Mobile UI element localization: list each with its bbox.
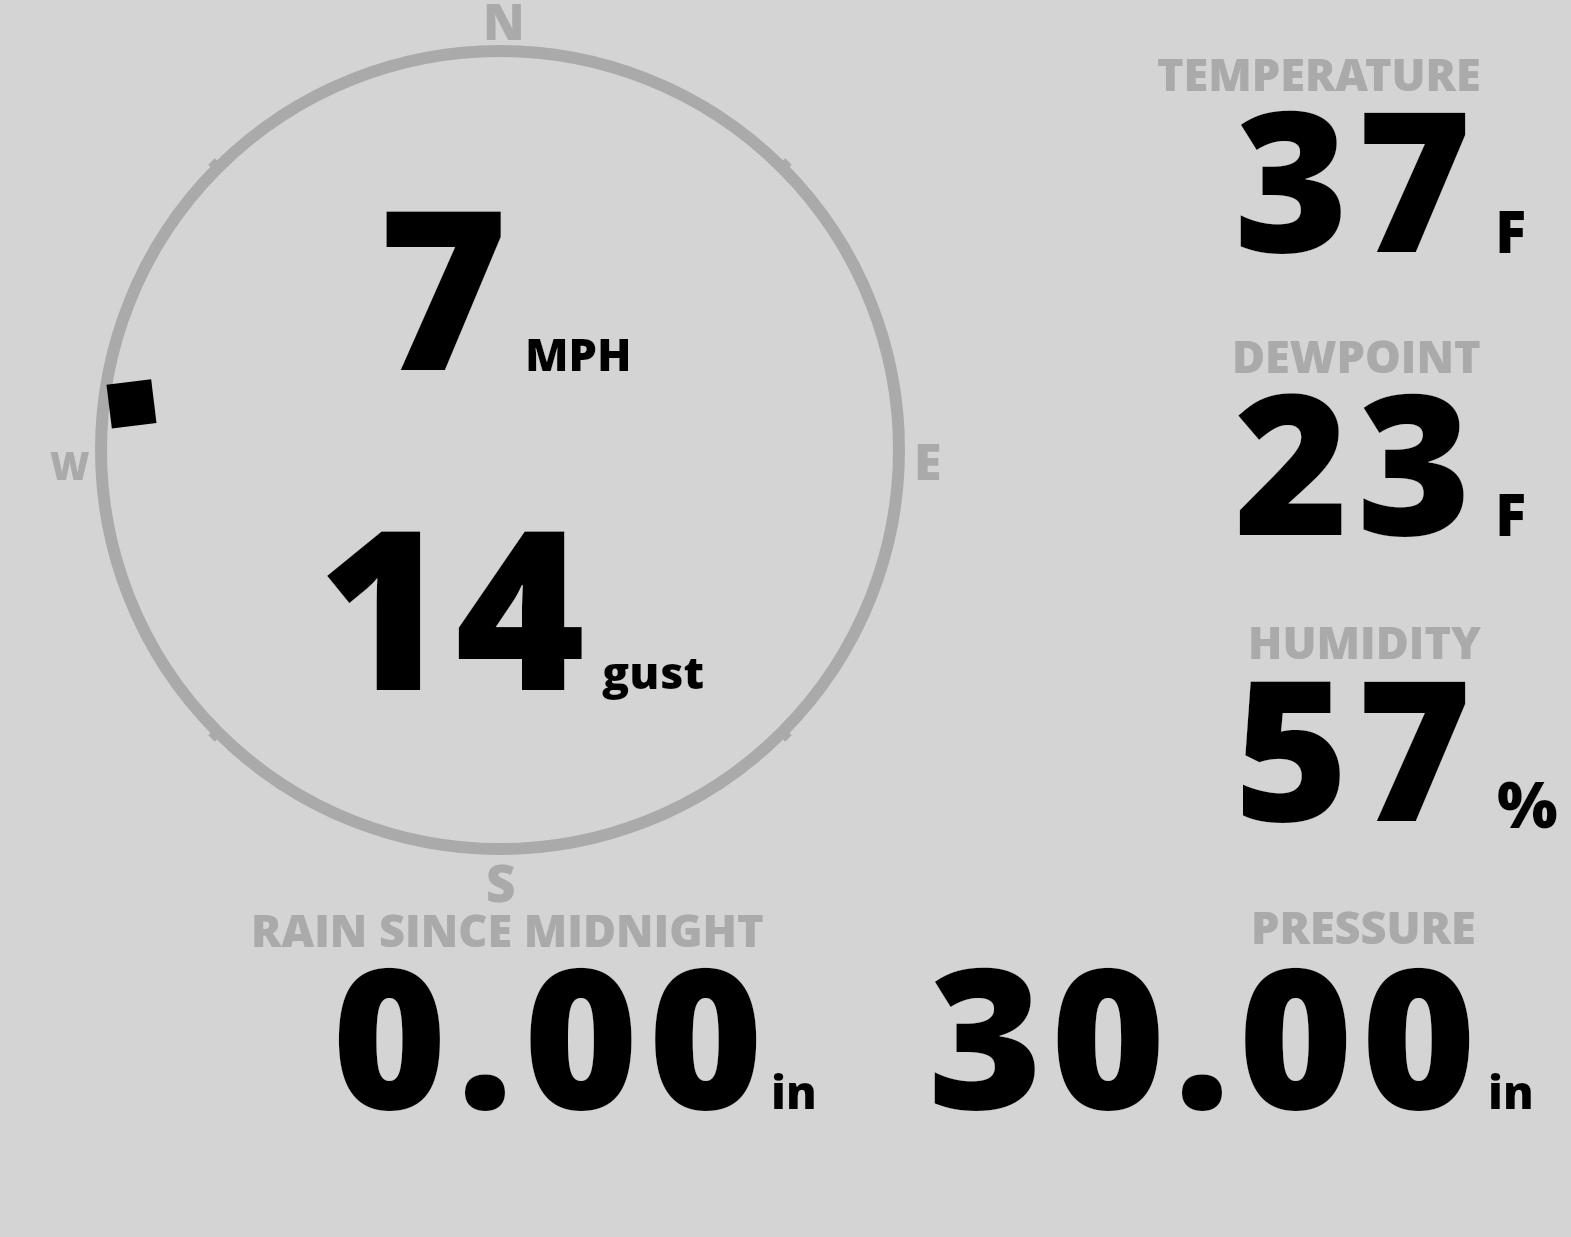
staticText: 14: [318, 453, 593, 755]
staticText: DEWPOINT: [1232, 325, 1481, 386]
staticText: 57: [1234, 612, 1480, 879]
staticText: gust: [602, 641, 705, 702]
staticText: MPH: [525, 323, 632, 384]
staticText: N: [483, 0, 525, 55]
staticText: S: [486, 847, 516, 916]
staticText: HUMIDITY: [1248, 611, 1481, 672]
staticText: in: [1488, 1060, 1534, 1123]
staticText: in: [771, 1060, 817, 1123]
staticText: TEMPERATURE: [1157, 43, 1481, 104]
button[interactable]: Wind direction compass, 7 MPH, 14 gust, …: [88, 38, 916, 864]
button[interactable]: TEMPERATURE 37 F: [1150, 46, 1560, 268]
staticText: W: [50, 439, 90, 491]
staticText: 30.00: [928, 900, 1485, 1167]
staticText: 23: [1234, 326, 1480, 593]
staticText: RAIN SINCE MIDNIGHT: [251, 899, 764, 960]
button[interactable]: DEWPOINT 23 F: [1150, 330, 1560, 551]
staticText: E: [914, 427, 942, 495]
staticText: 0.00: [332, 900, 774, 1167]
staticText: F: [1495, 474, 1527, 553]
button[interactable]: PRESSURE 30.00 in: [920, 900, 1545, 1125]
staticText: PRESSURE: [1251, 896, 1476, 957]
staticText: 37: [1234, 43, 1480, 310]
staticText: F: [1495, 191, 1527, 270]
button[interactable]: RAIN SINCE MIDNIGHT 0.00 in: [250, 903, 825, 1125]
button[interactable]: HUMIDITY 57 %: [1150, 615, 1565, 837]
staticText: %: [1497, 760, 1558, 847]
staticText: 7: [378, 133, 509, 435]
